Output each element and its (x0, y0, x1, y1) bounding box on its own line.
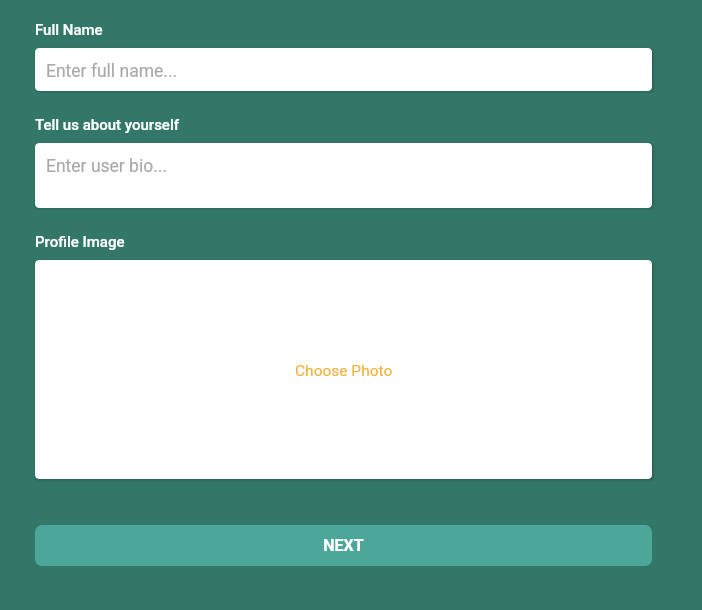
button[interactable]: User bio input (35, 143, 652, 208)
staticText: Full Name (35, 21, 103, 39)
staticText: Enter user bio... (46, 156, 168, 177)
staticText: NEXT (323, 536, 364, 555)
staticText: Tell us about yourself (35, 116, 179, 134)
button[interactable]: Choose Photo (35, 260, 652, 479)
staticText: Enter full name... (46, 61, 178, 82)
button[interactable]: Full name input (35, 48, 652, 91)
staticText: Choose Photo (295, 362, 393, 380)
staticText: Profile Image (35, 233, 125, 251)
button[interactable]: NEXT (35, 525, 652, 566)
